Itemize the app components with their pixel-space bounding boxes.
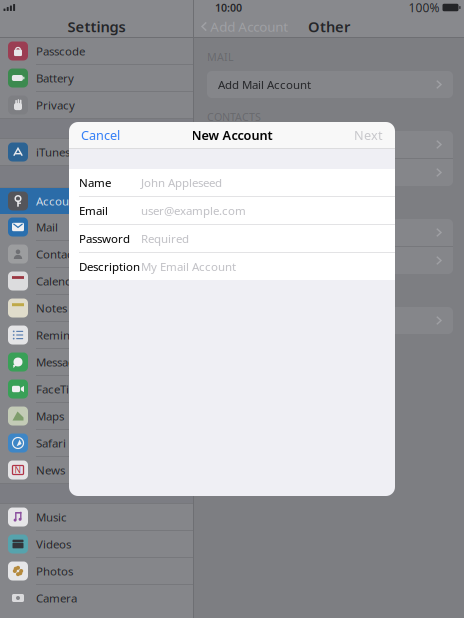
- staticText: Maps: [36, 408, 64, 424]
- staticText: Add Account: [210, 18, 288, 35]
- staticText: Privacy: [36, 97, 75, 113]
- staticText: Calendar: [36, 273, 83, 289]
- button[interactable]: Safari: [0, 430, 193, 456]
- staticText: Videos: [36, 536, 71, 552]
- button[interactable]: Add Account: [207, 159, 453, 186]
- staticText: News: [36, 462, 65, 478]
- staticText: Mail: [36, 219, 58, 235]
- button[interactable]: Cancel: [81, 126, 120, 144]
- button[interactable]: Reminders: [0, 322, 193, 348]
- button[interactable]: Passcode: [0, 38, 193, 64]
- staticText: Required: [141, 231, 189, 246]
- staticText: Reminders: [36, 327, 93, 343]
- staticText: Add Account: [218, 253, 286, 268]
- staticText: user@example.com: [141, 203, 246, 218]
- staticText: Accounts: [36, 193, 85, 209]
- button[interactable]: FaceTime: [0, 376, 193, 402]
- staticText: Battery: [36, 70, 74, 86]
- button[interactable]: N: [0, 457, 193, 483]
- button[interactable]: Accounts: [0, 188, 193, 214]
- staticText: Passcode: [36, 43, 85, 59]
- staticText: Other: [308, 17, 350, 36]
- staticText: New Account: [191, 126, 272, 144]
- button[interactable]: Messages: [0, 349, 193, 375]
- button[interactable]: iCloud: [207, 219, 453, 246]
- staticText: My Email Account: [141, 259, 236, 274]
- button[interactable]: Battery: [0, 65, 193, 91]
- button[interactable]: Mail: [0, 214, 193, 240]
- button[interactable]: Calendar: [0, 268, 193, 294]
- staticText: Photos: [36, 563, 73, 579]
- staticText: MAIL: [207, 50, 234, 64]
- staticText: N: [14, 464, 21, 476]
- button[interactable]: Add Account: [207, 307, 453, 334]
- staticText: Cancel: [81, 126, 120, 144]
- staticText: iTunes: [36, 144, 70, 160]
- staticText: Next: [354, 126, 383, 144]
- button[interactable]: Maps: [0, 403, 193, 429]
- staticText: Messages: [36, 354, 86, 370]
- staticText: FaceTime: [36, 381, 86, 397]
- staticText: CALENDARS: [207, 198, 269, 212]
- button[interactable]: Privacy: [0, 92, 193, 118]
- button[interactable]: Next: [354, 126, 383, 144]
- button[interactable]: Contacts: [0, 241, 193, 267]
- staticText: Password: [79, 231, 130, 246]
- staticText: Contacts: [36, 246, 82, 262]
- button[interactable]: Notes: [0, 295, 193, 321]
- button[interactable]: Music: [0, 504, 193, 530]
- button[interactable]: iTunes: [0, 139, 193, 165]
- button[interactable]: Add Account: [207, 247, 453, 274]
- staticText: 100%: [408, 0, 439, 15]
- button[interactable]: iCloud: [207, 131, 453, 158]
- button[interactable]: Photos: [0, 558, 193, 584]
- button[interactable]: Videos: [0, 531, 193, 557]
- staticText: Camera: [36, 590, 77, 606]
- button[interactable]: Add Mail Account: [207, 71, 453, 98]
- staticText: Description: [79, 259, 140, 274]
- staticText: 10:00: [215, 0, 242, 15]
- button[interactable]: Camera: [0, 585, 193, 611]
- staticText: iCloud: [218, 137, 252, 152]
- staticText: Add Mail Account: [218, 77, 311, 92]
- staticText: Name: [79, 175, 111, 190]
- staticText: Music: [36, 509, 67, 525]
- staticText: Email: [79, 203, 108, 218]
- staticText: Notes: [36, 300, 67, 316]
- staticText: CONTACTS: [207, 110, 261, 124]
- staticText: Safari: [36, 435, 66, 451]
- staticText: John Appleseed: [141, 175, 222, 190]
- button[interactable]: Add Account: [201, 18, 288, 35]
- staticText: Add Account: [218, 165, 286, 180]
- staticText: Settings: [67, 17, 125, 36]
